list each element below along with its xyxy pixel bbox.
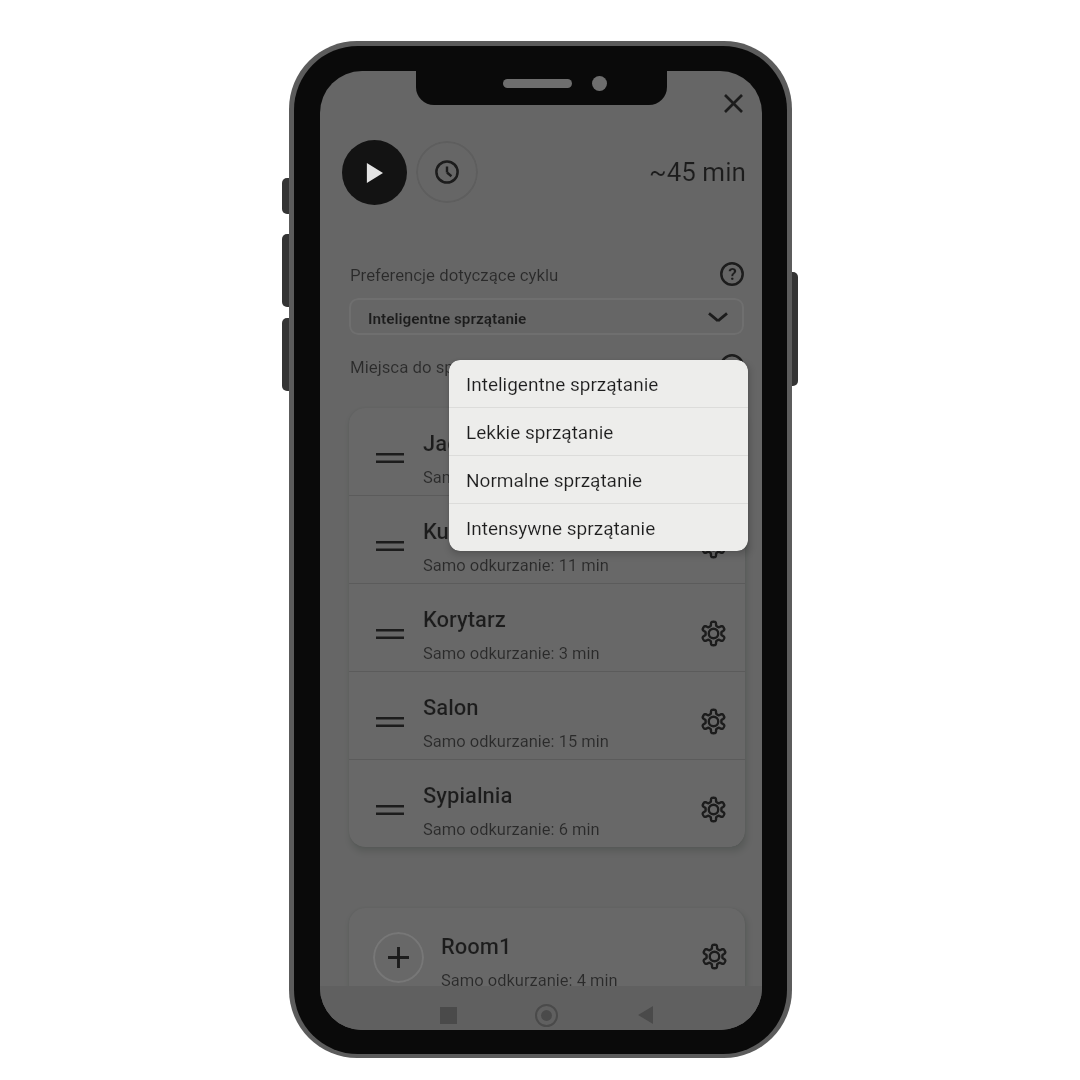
staticText: Samo odkurzanie: 6 min <box>423 820 600 839</box>
staticText: Salon <box>423 695 479 721</box>
staticText: ? <box>728 356 737 376</box>
button[interactable]: Help <box>714 256 750 292</box>
button[interactable]: Sypialnia <box>349 760 745 847</box>
button[interactable]: Korytarz <box>349 584 745 671</box>
button[interactable]: Settings <box>694 702 732 740</box>
staticText: Korytarz <box>423 607 506 633</box>
staticText: ~45 min <box>649 157 746 187</box>
button[interactable]: Kuchnia <box>349 496 745 583</box>
button[interactable]: Back <box>625 995 665 1030</box>
staticText: Samo odkurzanie: 15 min <box>423 732 609 751</box>
button[interactable]: Jadalnia <box>349 408 745 495</box>
button[interactable]: Start <box>342 140 407 205</box>
button[interactable]: Lekkie sprzątanie <box>449 408 748 455</box>
button[interactable]: Normalne sprzątanie <box>449 456 748 503</box>
button[interactable]: Settings <box>694 526 732 564</box>
staticText: Inteligentne sprzątanie <box>466 373 659 395</box>
staticText: Samo odkurzanie: 11 min <box>423 556 609 575</box>
button[interactable]: Home <box>526 995 566 1030</box>
button[interactable]: Settings <box>694 614 732 652</box>
button[interactable]: Inteligentne sprzątanie <box>449 360 748 407</box>
staticText: Normalne sprzątanie <box>466 469 643 491</box>
button[interactable]: Salon <box>349 672 745 759</box>
staticText: ? <box>728 264 737 284</box>
staticText: Kuchnia <box>423 519 503 545</box>
staticText: Miejsca do sprzątania <box>350 357 515 377</box>
button[interactable]: Help <box>714 349 750 383</box>
staticText: Samo odkurzanie: 4 min <box>441 971 618 986</box>
staticText: Lekkie sprzątanie <box>466 421 614 443</box>
button[interactable]: Schedule <box>416 141 478 203</box>
staticText: Jadalnia <box>423 431 507 457</box>
staticText: Intensywne sprzątanie <box>466 517 656 539</box>
staticText: Sypialnia <box>423 783 513 809</box>
staticText: Preferencje dotyczące cyklu <box>350 265 559 285</box>
staticText: Samo odkurzanie: 5 min <box>423 468 600 487</box>
staticText: Samo odkurzanie: 3 min <box>423 644 600 663</box>
button[interactable]: Close <box>711 81 755 125</box>
button[interactable]: Room1 <box>349 908 745 986</box>
button[interactable]: Intensywne sprzątanie <box>449 504 748 551</box>
button[interactable]: Settings <box>694 790 732 828</box>
staticText: Inteligentne sprzątanie <box>368 310 527 328</box>
staticText: Room1 <box>441 934 512 960</box>
button[interactable]: Inteligentne sprzątanie <box>349 298 744 335</box>
button[interactable]: Recents <box>428 995 468 1030</box>
button[interactable]: Settings <box>695 937 733 975</box>
